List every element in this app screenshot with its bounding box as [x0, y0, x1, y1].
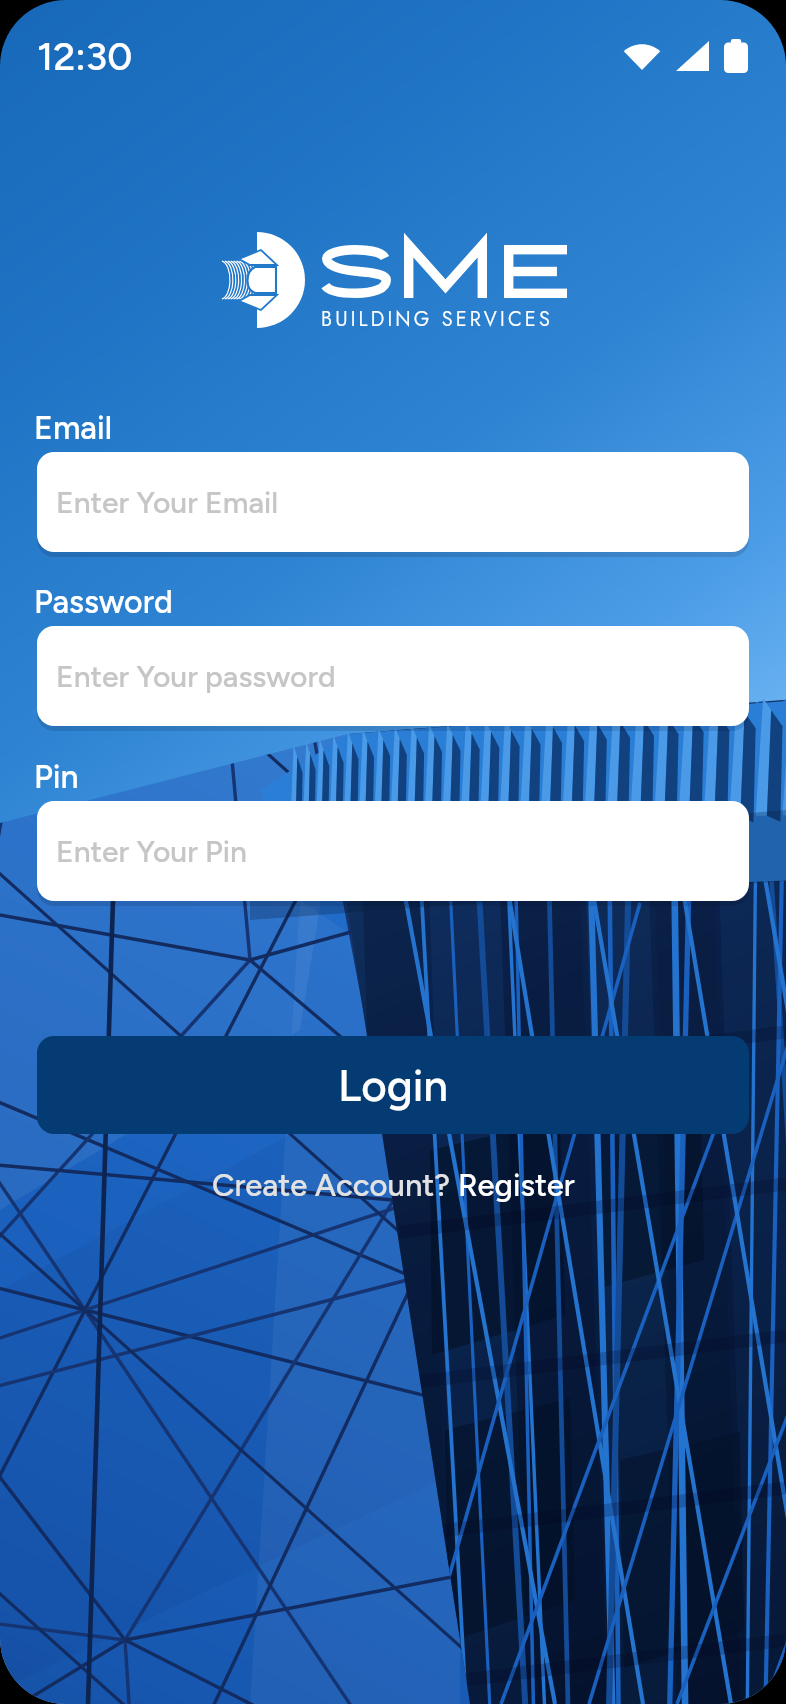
other: Cellular signal: [676, 41, 709, 71]
button[interactable]: Enter Your Email: [37, 452, 749, 552]
staticText: Enter Your password: [56, 658, 336, 694]
other: Battery: [724, 39, 748, 73]
staticText: Enter Your Email: [56, 484, 279, 520]
staticText: BUILDING SERVICES: [321, 305, 553, 334]
other: Wi-Fi: [623, 42, 661, 70]
staticText: Register: [458, 1167, 575, 1204]
staticText: Login: [338, 1059, 449, 1112]
staticText: Email: [34, 409, 113, 447]
button[interactable]: Login: [37, 1036, 749, 1134]
button[interactable]: Enter Your Pin: [37, 801, 749, 901]
staticText: Pin: [34, 758, 79, 796]
staticText: Create Account?: [212, 1167, 458, 1204]
button[interactable]: Create Account?: [202, 1163, 585, 1208]
button[interactable]: Enter Your password: [37, 626, 749, 726]
staticText: 12:30: [37, 33, 133, 80]
staticText: Password: [34, 583, 173, 621]
staticText: Enter Your Pin: [56, 833, 247, 869]
